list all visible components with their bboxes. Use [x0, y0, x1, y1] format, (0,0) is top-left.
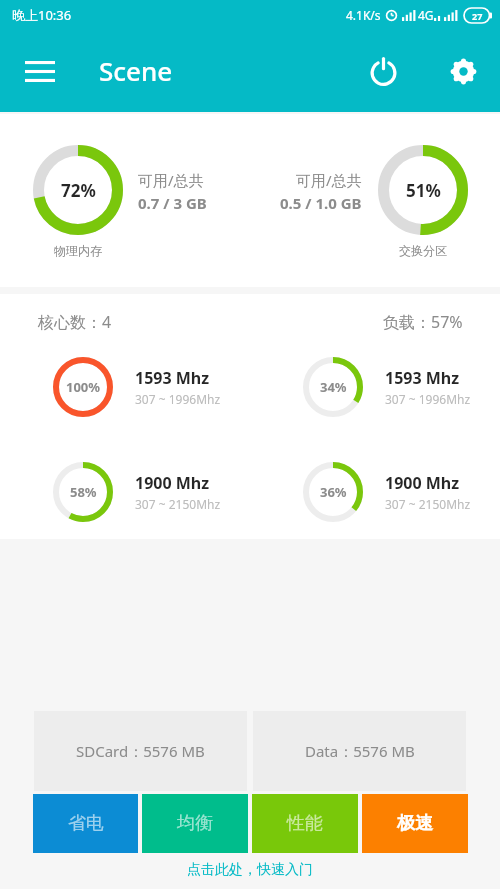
staticText: 核心数：4 [38, 311, 112, 333]
staticText: 可用/总共 [138, 170, 204, 190]
staticText: 交换分区 [399, 243, 447, 258]
button[interactable]: Menu [13, 44, 67, 98]
button[interactable]: 省电 [33, 794, 138, 853]
staticText: 极速 [397, 812, 433, 835]
staticText: 307 ~ 2150Mhz [135, 496, 221, 512]
staticText: 可用/总共 [296, 170, 362, 190]
staticText: 0.7 / 3 GB [138, 193, 207, 213]
staticText: 0.5 / 1.0 GB [280, 193, 362, 213]
staticText: SDCard：5576 MB [76, 741, 205, 761]
staticText: 72% [61, 179, 96, 202]
staticText: 307 ~ 1996Mhz [135, 391, 221, 407]
staticText: 负载：57% [383, 311, 463, 333]
staticText: 4G [418, 7, 434, 23]
staticText: 307 ~ 2150Mhz [385, 496, 471, 512]
staticText: 307 ~ 1996Mhz [385, 391, 471, 407]
staticText: 4.1K/s [346, 7, 381, 23]
button[interactable]: SDCard：5576 MB [34, 711, 247, 791]
staticText: 36% [320, 483, 347, 501]
staticText: 晚上10:36 [12, 6, 72, 24]
staticText: 1900 Mhz [135, 472, 210, 494]
staticText: 51% [406, 179, 441, 202]
button[interactable]: Data：5576 MB [253, 711, 466, 791]
button[interactable]: 性能 [252, 794, 358, 853]
staticText: 1593 Mhz [385, 367, 460, 389]
button[interactable]: Power [358, 46, 408, 96]
staticText: 100% [66, 378, 101, 396]
staticText: 58% [70, 483, 97, 501]
staticText: 点击此处，快速入门 [187, 861, 313, 879]
staticText: Data：5576 MB [305, 741, 415, 761]
button[interactable]: Settings [438, 46, 488, 96]
staticText: 1593 Mhz [135, 367, 210, 389]
staticText: 27 [472, 10, 483, 22]
button[interactable]: 点击此处，快速入门 [0, 853, 500, 886]
staticText: 性能 [287, 812, 323, 835]
staticText: 均衡 [177, 812, 213, 835]
button[interactable]: 极速 [362, 794, 468, 853]
staticText: 物理内存 [54, 243, 102, 258]
button[interactable]: 均衡 [142, 794, 248, 853]
staticText: 1900 Mhz [385, 472, 460, 494]
staticText: 省电 [68, 812, 104, 835]
staticText: Scene [99, 53, 173, 88]
staticText: 34% [320, 378, 347, 396]
